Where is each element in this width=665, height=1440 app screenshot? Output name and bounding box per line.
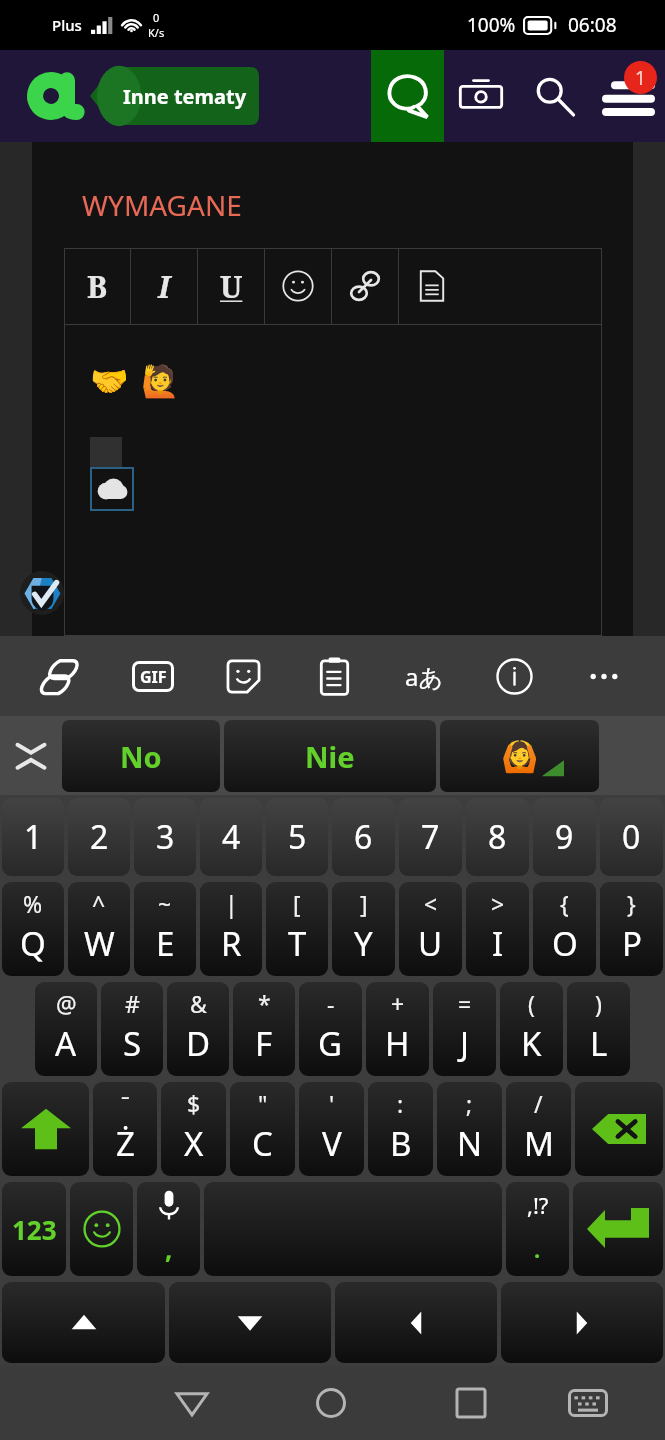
button[interactable]: Inne tematy — [90, 67, 259, 125]
button[interactable]: 3 — [134, 798, 196, 876]
button[interactable] — [399, 248, 465, 324]
button[interactable]: ~ — [134, 882, 196, 976]
button[interactable] — [265, 248, 331, 324]
button[interactable]: + — [366, 982, 429, 1076]
staticText: No — [120, 737, 162, 776]
button[interactable]: Left — [335, 1282, 497, 1363]
button[interactable]: " — [230, 1082, 295, 1176]
button[interactable]: Back — [155, 1366, 229, 1440]
button[interactable]: I — [131, 248, 197, 324]
button[interactable]: 0 — [600, 798, 663, 876]
button[interactable]: $ — [161, 1082, 226, 1176]
button[interactable]: ] — [332, 882, 395, 976]
staticText: # — [125, 988, 140, 1019]
button[interactable]: ˉ — [93, 1082, 157, 1176]
button[interactable]: Menu — [592, 50, 665, 142]
button[interactable]: Themes — [16, 636, 107, 716]
button[interactable]: B — [64, 248, 130, 324]
button[interactable]: 9 — [533, 798, 596, 876]
button[interactable]: Up — [2, 1282, 165, 1363]
button[interactable]: > — [466, 882, 529, 976]
staticText: 100% — [467, 12, 516, 38]
staticText: 🤝 — [90, 363, 129, 399]
button[interactable]: ^ — [68, 882, 130, 976]
staticText: / — [534, 1088, 543, 1119]
button[interactable]: 1 — [2, 798, 64, 876]
button[interactable]: Clipboard — [289, 636, 379, 716]
staticText: : — [397, 1088, 404, 1119]
staticText: 06:08 — [568, 12, 617, 38]
button[interactable]: } — [600, 882, 663, 976]
button[interactable]: Emoji — [70, 1182, 133, 1276]
staticText: M — [524, 1121, 554, 1166]
button[interactable]: * — [233, 982, 295, 1076]
button[interactable]: Nie — [224, 720, 436, 792]
button[interactable]: 5 — [266, 798, 328, 876]
button[interactable]: / — [506, 1082, 571, 1176]
button[interactable]: Hide suggestions — [0, 716, 62, 795]
staticText: " — [258, 1088, 268, 1119]
button[interactable]: ) — [567, 982, 630, 1076]
button[interactable]: Home — [294, 1366, 368, 1440]
button[interactable]: @ — [35, 982, 97, 1076]
button[interactable] — [332, 248, 398, 324]
button[interactable]: Chat — [371, 50, 444, 142]
staticText: T — [288, 921, 307, 966]
other: Emoji — [83, 1210, 121, 1248]
staticText: Plus — [52, 15, 82, 35]
button[interactable]: | — [200, 882, 262, 976]
staticText: 🙋 — [141, 363, 180, 399]
button[interactable]: Right — [501, 1282, 663, 1363]
button[interactable]: ( — [500, 982, 563, 1076]
staticText: V — [322, 1121, 342, 1166]
staticText: ( — [528, 988, 535, 1019]
button[interactable]: Keyboard — [551, 1366, 625, 1440]
button[interactable]: & — [167, 982, 229, 1076]
button[interactable]: GIF — [107, 636, 198, 716]
button[interactable]: Camera — [444, 50, 518, 142]
button[interactable]: Home — [26, 67, 82, 125]
staticText: 1 — [24, 815, 43, 859]
button[interactable]: Enter — [573, 1182, 663, 1276]
button[interactable]: % — [2, 882, 64, 976]
staticText: F — [255, 1021, 273, 1066]
button[interactable]: Search — [518, 50, 592, 142]
button[interactable]: , — [137, 1182, 200, 1276]
button[interactable]: 6 — [332, 798, 395, 876]
button[interactable]: Recents — [434, 1366, 508, 1440]
other: Backspace — [592, 1114, 646, 1144]
button[interactable]: More — [559, 636, 649, 716]
button[interactable]: 123 — [2, 1182, 66, 1276]
button[interactable]: [ — [266, 882, 328, 976]
button[interactable]: Down — [169, 1282, 331, 1363]
button[interactable]: : — [368, 1082, 433, 1176]
other: Space — [204, 1182, 502, 1276]
button[interactable]: ' — [299, 1082, 364, 1176]
button[interactable]: - — [299, 982, 362, 1076]
button[interactable]: # — [101, 982, 163, 1076]
staticText: 0 — [622, 815, 641, 859]
other: Left — [394, 1310, 438, 1336]
button[interactable]: ,!? — [506, 1182, 569, 1276]
button[interactable]: 8 — [466, 798, 529, 876]
staticText: - — [327, 988, 335, 1019]
button[interactable]: 🙆 — [440, 720, 599, 792]
button[interactable]: Autofill — [20, 571, 64, 615]
button[interactable]: < — [399, 882, 462, 976]
button[interactable]: 2 — [68, 798, 130, 876]
button[interactable]: 4 — [200, 798, 262, 876]
button[interactable]: Space — [204, 1182, 502, 1276]
button[interactable]: No — [62, 720, 220, 792]
button[interactable]: Info — [469, 636, 559, 716]
staticText: I — [158, 266, 171, 307]
button[interactable]: Backspace — [575, 1082, 663, 1176]
button[interactable]: Stickers — [198, 636, 289, 716]
button[interactable]: Shift — [2, 1082, 89, 1176]
staticText: $ — [187, 1088, 201, 1119]
button[interactable]: U — [198, 248, 264, 324]
button[interactable]: Languages — [379, 636, 469, 716]
button[interactable]: 7 — [399, 798, 462, 876]
button[interactable]: = — [433, 982, 496, 1076]
button[interactable]: { — [533, 882, 596, 976]
button[interactable]: ; — [437, 1082, 502, 1176]
